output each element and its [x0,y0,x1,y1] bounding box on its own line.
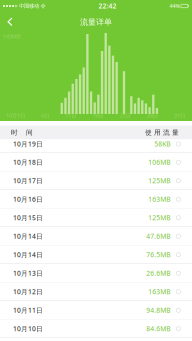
button[interactable]: 10月17日 [0,171,192,190]
button[interactable]: 10月15日 [0,208,192,227]
staticText: 163MB [148,195,170,204]
staticText: 10月10日 [13,324,43,333]
staticText: 47.6MB [146,232,170,241]
staticText: 时 间 [11,128,33,137]
staticText: 10月15日 [13,213,43,222]
staticText: 10月12日 [13,287,43,296]
staticText: 10月14日 [13,232,43,241]
staticText: 26日 [147,112,158,119]
staticText: 125MB [148,176,170,185]
staticText: 94.8MB [146,306,170,315]
button[interactable]: 10月14日 [0,245,192,264]
staticText: 10月1日 [6,112,25,119]
staticText: 6日 [41,112,49,119]
staticText: 125MB [148,213,170,222]
staticText: 31日 [174,112,185,119]
staticText: 16日 [92,112,103,119]
staticText: 中国移动 [19,3,39,9]
staticText: 106MB [148,158,170,167]
staticText: 10月19日 [13,140,43,148]
staticText: 10月11日 [13,306,43,315]
button[interactable]: 10月10日 [0,319,192,338]
button[interactable]: 10月18日 [0,153,192,171]
staticText: 21日 [120,112,131,119]
button[interactable]: 10月11日 [0,301,192,319]
staticText: 10月16日 [13,195,43,204]
staticText: 76.5MB [146,250,170,259]
button[interactable]: 10月16日 [0,190,192,208]
staticText: 10月14日 [13,250,43,259]
staticText: 10月18日 [13,158,43,167]
staticText: 使 用 流 量 [145,128,179,137]
staticText: 163MB [148,287,170,296]
staticText: 令 [40,3,45,9]
staticText: 10月13日 [13,269,43,278]
button[interactable]: 返回 [0,12,20,32]
staticText: 流量详单 [80,17,112,27]
staticText: 10月17日 [13,176,43,185]
staticText: 44% [169,2,179,10]
staticText: 143MB [3,33,20,40]
button[interactable]: 10月13日 [0,264,192,282]
staticText: 84.6MB [146,324,170,333]
staticText: 58KB [154,140,170,148]
button[interactable]: 10月12日 [0,282,192,301]
staticText: 26.6MB [146,269,170,278]
staticText: 11日 [65,112,76,119]
button[interactable]: 10月14日 [0,227,192,245]
button[interactable]: 10月19日 [0,139,192,153]
staticText: 22:42 [98,2,116,10]
